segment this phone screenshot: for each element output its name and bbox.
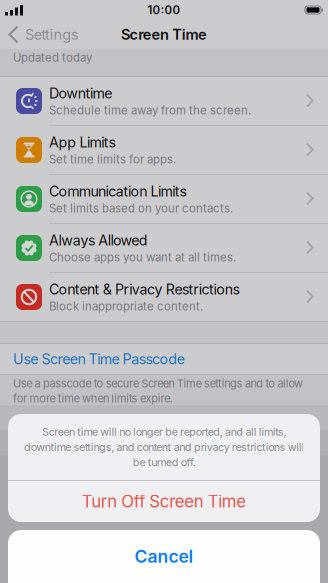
button[interactable]: Downtime — [0, 77, 328, 125]
staticText: Always Allowed — [49, 232, 148, 249]
staticText: Set time limits for apps. — [49, 153, 176, 166]
button[interactable]: Cancel — [8, 530, 320, 583]
button[interactable]: Back — [0, 26, 79, 43]
staticText: Set limits based on your contacts. — [49, 202, 233, 215]
button[interactable]: Turn Off Screen Time — [8, 481, 320, 522]
staticText: Updated today — [13, 51, 92, 64]
staticText: Cancel — [134, 546, 193, 567]
button[interactable]: Communication Limits — [0, 175, 328, 223]
staticText: Use Screen Time Passcode — [13, 351, 185, 367]
staticText: Use a passcode to secure Screen Time set… — [13, 377, 303, 405]
staticText: Content & Privacy Restrictions — [49, 281, 239, 298]
button[interactable]: Always Allowed — [0, 224, 328, 272]
staticText: Screen Time — [121, 26, 207, 43]
button[interactable]: Content & Privacy Restrictions — [0, 273, 328, 321]
staticText: Schedule time away from the screen. — [49, 104, 251, 117]
staticText: App Limits — [49, 134, 115, 151]
button[interactable]: Use Screen Time Passcode — [0, 344, 328, 375]
staticText: Downtime — [49, 85, 112, 102]
staticText: Block inappropriate content. — [49, 300, 203, 313]
staticText: Screen time will no longer be reported, … — [24, 425, 304, 469]
staticText: 10:00 — [147, 3, 180, 17]
button[interactable]: App Limits — [0, 126, 328, 174]
staticText: Settings — [25, 26, 79, 43]
staticText: Communication Limits — [49, 183, 186, 200]
staticText: Choose apps you want at all times. — [49, 251, 236, 264]
staticText: Turn Off Screen Time — [82, 492, 246, 511]
